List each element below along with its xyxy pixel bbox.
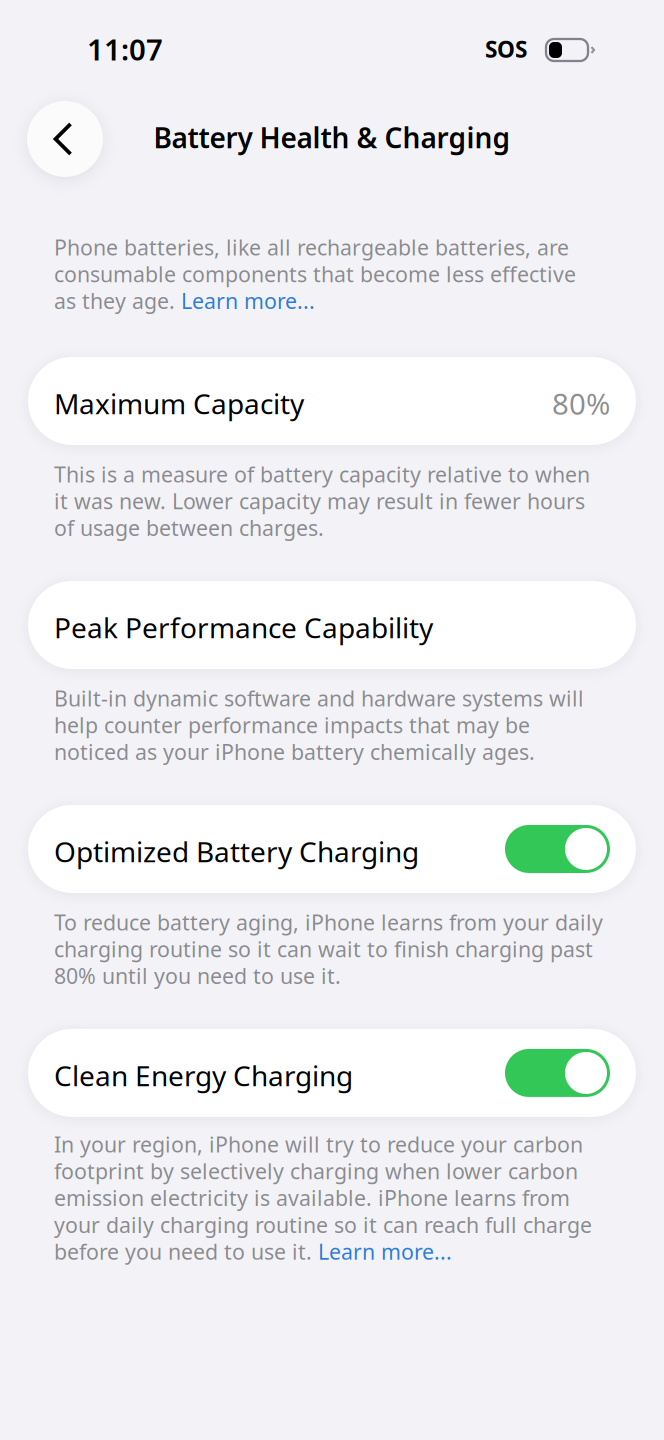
button[interactable]: Optimized Battery Charging bbox=[0, 805, 664, 893]
staticText: SOS bbox=[485, 34, 527, 64]
staticText: This is a measure of battery capacity re… bbox=[54, 460, 590, 542]
staticText: In your region, iPhone will try to reduc… bbox=[54, 1130, 592, 1266]
staticText: Clean Energy Charging bbox=[54, 1057, 353, 1094]
staticText: Phone batteries, like all rechargeable b… bbox=[54, 233, 576, 315]
staticText: Optimized Battery Charging bbox=[54, 833, 419, 870]
staticText: Peak Performance Capability bbox=[54, 609, 433, 646]
staticText: Maximum Capacity bbox=[54, 385, 304, 422]
staticText: To reduce battery aging, iPhone learns f… bbox=[54, 908, 603, 990]
staticText: 11:07 bbox=[87, 29, 163, 68]
button[interactable]: Peak Performance Capability bbox=[0, 581, 664, 669]
staticText: Built-in dynamic software and hardware s… bbox=[54, 684, 584, 766]
button[interactable]: Clean Energy Charging bbox=[0, 1029, 664, 1117]
button[interactable]: Back bbox=[27, 101, 103, 177]
button[interactable]: Maximum Capacity bbox=[0, 357, 664, 445]
staticText: 80% bbox=[552, 384, 610, 423]
staticText: Battery Health & Charging bbox=[153, 119, 510, 156]
